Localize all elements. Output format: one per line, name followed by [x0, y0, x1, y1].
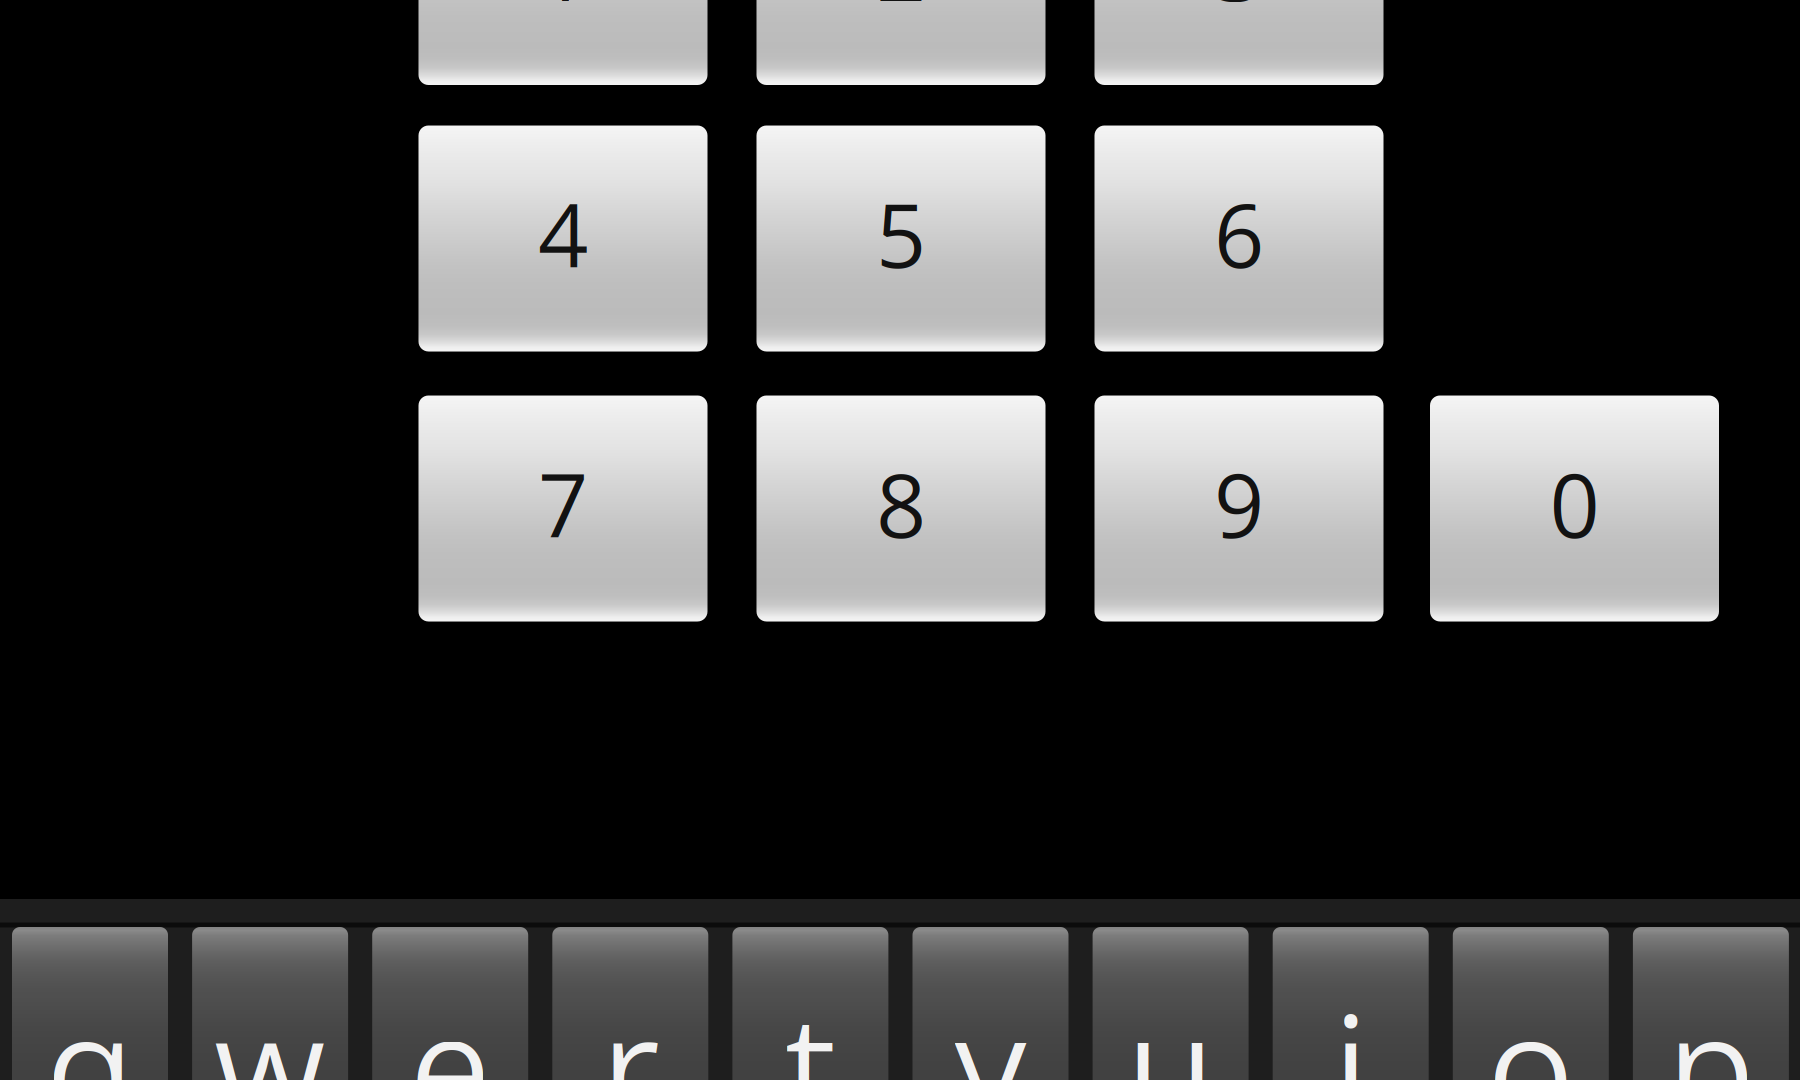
button[interactable]: 5 [756, 125, 1045, 351]
button[interactable]: w [192, 927, 348, 1080]
button[interactable]: 6 [1094, 125, 1383, 351]
button[interactable]: 2 [756, 0, 1045, 85]
staticText: u [1126, 965, 1215, 1080]
button[interactable]: r [552, 927, 708, 1080]
button[interactable]: i [1273, 927, 1429, 1080]
staticText: t [785, 965, 836, 1080]
staticText: 4 [538, 174, 588, 293]
button[interactable]: 3 [1094, 0, 1383, 85]
staticText: 2 [876, 0, 926, 27]
staticText: 7 [538, 444, 588, 563]
staticText: 8 [876, 444, 926, 563]
staticText: 1 [538, 0, 588, 27]
staticText: 5 [876, 174, 926, 293]
button[interactable]: 4 [418, 125, 707, 351]
staticText: o [1487, 965, 1575, 1080]
staticText: w [214, 965, 326, 1080]
staticText: 3 [1214, 0, 1264, 27]
button[interactable]: e [372, 927, 528, 1080]
button[interactable]: o [1453, 927, 1609, 1080]
staticText: r [601, 965, 660, 1080]
staticText: i [1333, 965, 1369, 1080]
button[interactable]: q [12, 927, 168, 1080]
button[interactable]: 1 [418, 0, 707, 85]
staticText: 6 [1214, 174, 1264, 293]
staticText: 0 [1549, 444, 1599, 563]
staticText: y [954, 965, 1026, 1080]
staticText: p [1666, 965, 1755, 1080]
staticText: q [45, 965, 134, 1080]
staticText: e [409, 965, 491, 1080]
button[interactable]: 9 [1094, 395, 1383, 621]
button[interactable]: t [732, 927, 888, 1080]
button[interactable]: u [1093, 927, 1249, 1080]
button[interactable]: 7 [418, 395, 707, 621]
button[interactable]: y [912, 927, 1068, 1080]
staticText: 9 [1214, 444, 1264, 563]
button[interactable]: 0 [1430, 395, 1719, 621]
button[interactable]: p [1633, 927, 1789, 1080]
button[interactable]: 8 [756, 395, 1045, 621]
